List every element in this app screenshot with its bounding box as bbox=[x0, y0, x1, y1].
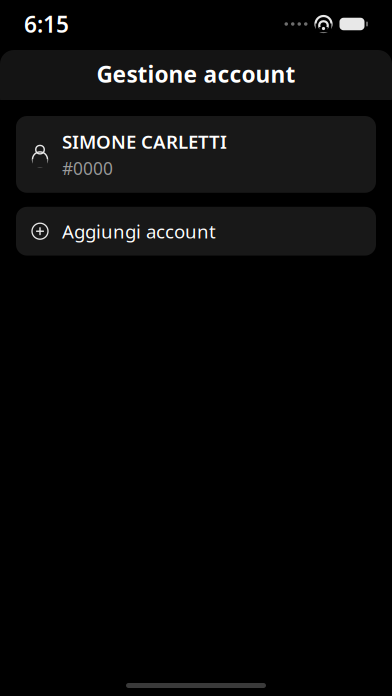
staticText: #0000 bbox=[62, 157, 113, 180]
button[interactable]: SIMONE CARLETTI bbox=[16, 116, 376, 193]
staticText: SIMONE CARLETTI bbox=[62, 129, 227, 154]
staticText: 6:15 bbox=[24, 9, 69, 39]
staticText: Gestione account bbox=[96, 59, 295, 89]
staticText: Aggiungi account bbox=[62, 219, 216, 244]
button[interactable]: Aggiungi account bbox=[16, 207, 376, 256]
